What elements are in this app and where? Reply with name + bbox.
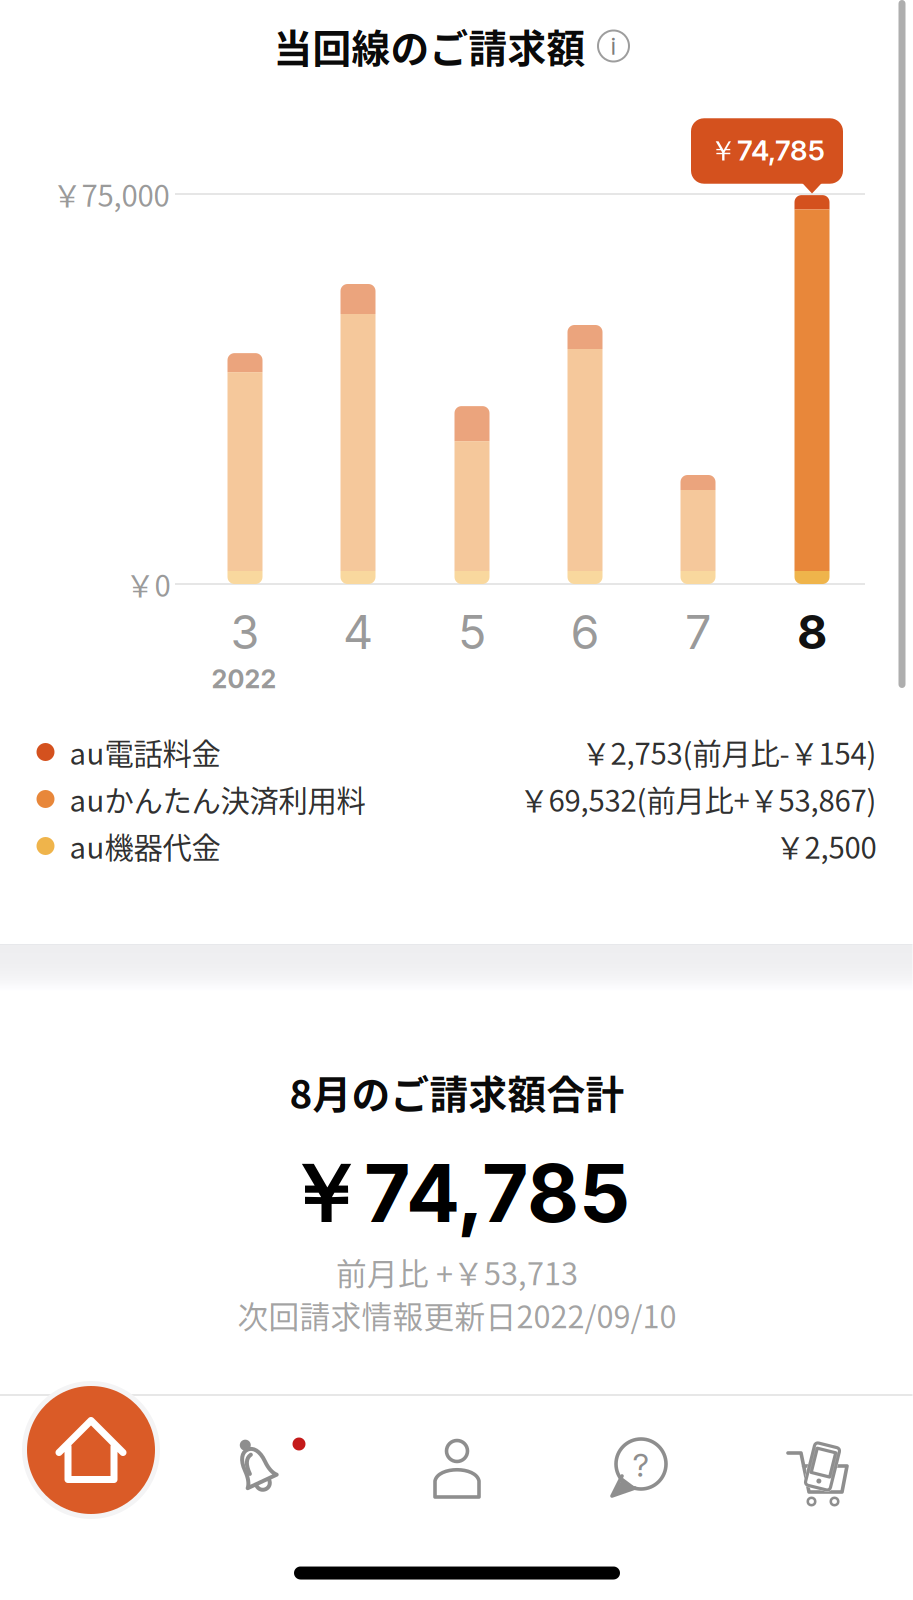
button[interactable]: auかんたん決済利用料 [0,775,912,822]
button[interactable]: Notifications [180,1411,330,1521]
staticText: 6 [570,604,599,660]
staticText: ￥2,753(前月比-￥154) [581,731,876,773]
staticText: 次回請求情報更新日2022/09/10 [237,1293,676,1337]
staticText: 当回線のご請求額 [273,18,585,74]
staticText: ? [632,1446,649,1484]
staticText: auかんたん決済利用料 [69,778,365,820]
button[interactable]: Help [565,1413,715,1523]
button[interactable]: au電話料金 [0,728,912,775]
staticText: 前月比 +￥53,713 [336,1250,578,1294]
staticText: ￥69,532(前月比+￥53,867) [519,778,876,820]
button[interactable]: Shop [743,1417,893,1527]
staticText: au電話料金 [69,731,220,773]
staticText: 8月のご請求額合計 [289,1064,624,1120]
staticText: ￥0 [125,563,170,605]
staticText: ￥75,000 [52,173,169,215]
staticText: 8 [797,604,827,660]
staticText: i [610,31,616,60]
button[interactable]: Home [22,1381,160,1519]
staticText: 3 [230,604,259,660]
staticText: ￥2,500 [775,825,876,867]
button[interactable]: Account [382,1414,532,1524]
button[interactable]: au機器代金 [0,822,912,869]
staticText: ￥74,785 [709,133,825,169]
staticText: ￥74,785 [284,1144,630,1246]
staticText: 4 [343,604,373,660]
button[interactable]: 当回線のご請求額 [242,16,662,76]
staticText: 5 [458,604,486,660]
staticText: 7 [685,604,711,660]
staticText: au機器代金 [69,825,220,867]
staticText: 2022 [211,664,276,694]
